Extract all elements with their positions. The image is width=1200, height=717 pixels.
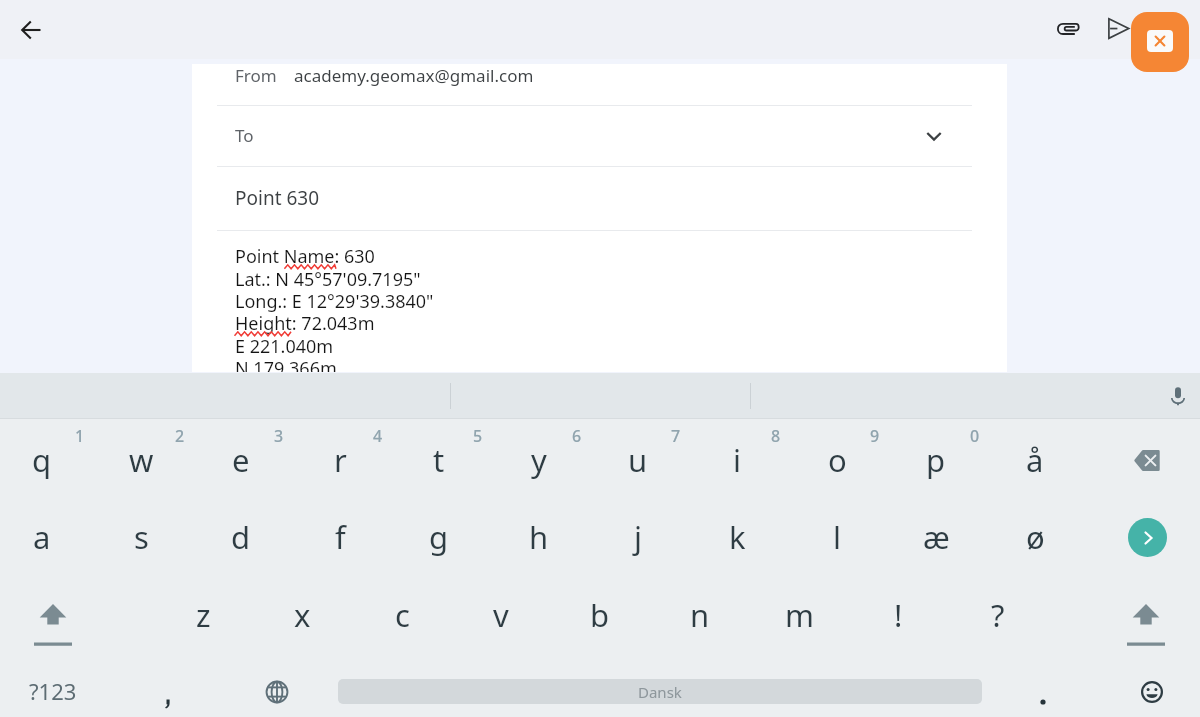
button[interactable]: j bbox=[593, 510, 683, 564]
button[interactable]: Enter bbox=[1102, 505, 1192, 569]
staticText: ! bbox=[894, 594, 903, 636]
staticText: r bbox=[334, 439, 347, 481]
staticText: Height: 72.043m bbox=[235, 311, 375, 336]
button[interactable]: ! bbox=[853, 588, 943, 642]
button[interactable]: d bbox=[196, 510, 286, 564]
staticText: z bbox=[196, 594, 211, 636]
button[interactable]: x bbox=[257, 588, 347, 642]
staticText: d bbox=[231, 516, 251, 558]
staticText: k bbox=[729, 516, 746, 558]
button[interactable]: z bbox=[158, 588, 248, 642]
button[interactable]: Comma bbox=[123, 672, 213, 717]
staticText: 6 bbox=[572, 425, 582, 447]
button[interactable]: g bbox=[394, 510, 484, 564]
button[interactable]: Attach file bbox=[1046, 7, 1090, 51]
button[interactable]: y bbox=[494, 433, 584, 487]
staticText: From bbox=[235, 64, 277, 87]
button[interactable]: ø bbox=[990, 510, 1080, 564]
staticText: Point 630 bbox=[235, 185, 320, 211]
button[interactable]: Dansk bbox=[338, 679, 982, 704]
staticText: h bbox=[529, 516, 549, 558]
button[interactable]: å bbox=[990, 433, 1080, 487]
button[interactable]: a bbox=[0, 510, 87, 564]
button[interactable]: Period bbox=[998, 670, 1088, 717]
staticText: 7 bbox=[671, 425, 681, 447]
button[interactable]: q bbox=[0, 433, 87, 487]
staticText: E 221.040m bbox=[235, 334, 334, 359]
staticText: academy.geomax@gmail.com bbox=[294, 64, 534, 87]
staticText: To bbox=[235, 124, 254, 147]
staticText: b bbox=[590, 594, 610, 636]
button[interactable]: h bbox=[494, 510, 584, 564]
button[interactable]: ? bbox=[953, 588, 1043, 642]
button[interactable]: p bbox=[891, 433, 981, 487]
staticText: ø bbox=[1026, 516, 1045, 558]
button[interactable]: n bbox=[655, 588, 745, 642]
staticText: u bbox=[628, 439, 648, 481]
button[interactable]: æ bbox=[891, 510, 981, 564]
staticText: 5 bbox=[473, 425, 483, 447]
staticText: Point Name: 630 bbox=[235, 244, 375, 269]
button[interactable]: Voice input bbox=[1155, 373, 1200, 418]
button[interactable]: Send bbox=[1097, 7, 1141, 51]
staticText: 9 bbox=[870, 425, 880, 447]
button[interactable]: o bbox=[792, 433, 882, 487]
staticText: l bbox=[833, 516, 841, 558]
button[interactable]: i bbox=[692, 433, 782, 487]
button[interactable]: Backspace bbox=[1102, 428, 1192, 492]
button[interactable]: u bbox=[593, 433, 683, 487]
staticText: å bbox=[1026, 439, 1044, 481]
staticText: 4 bbox=[373, 425, 383, 447]
staticText: n bbox=[690, 594, 710, 636]
staticText: Long.: E 12°29'39.3840" bbox=[235, 289, 434, 314]
staticText: q bbox=[32, 439, 52, 481]
button[interactable]: m bbox=[754, 588, 844, 642]
button[interactable]: s bbox=[96, 510, 186, 564]
staticText: 2 bbox=[175, 425, 185, 447]
staticText: e bbox=[232, 439, 250, 481]
button[interactable]: r bbox=[295, 433, 385, 487]
staticText: c bbox=[395, 594, 410, 636]
button[interactable]: b bbox=[555, 588, 645, 642]
staticText: y bbox=[531, 439, 547, 481]
button[interactable]: Shift bbox=[1101, 592, 1191, 656]
staticText: f bbox=[335, 516, 346, 558]
staticText: ? bbox=[991, 594, 1005, 636]
staticText: m bbox=[785, 594, 814, 636]
staticText: N 179.366m bbox=[235, 356, 337, 372]
button[interactable]: l bbox=[792, 510, 882, 564]
button[interactable]: f bbox=[295, 510, 385, 564]
staticText: 1 bbox=[75, 425, 85, 447]
staticText: i bbox=[733, 439, 741, 481]
button[interactable]: t bbox=[394, 433, 484, 487]
staticText: j bbox=[634, 516, 642, 558]
staticText: 0 bbox=[970, 425, 980, 447]
staticText: a bbox=[33, 516, 51, 558]
button[interactable]: Emoji bbox=[1107, 660, 1197, 717]
button[interactable]: c bbox=[357, 588, 447, 642]
staticText: p bbox=[926, 439, 946, 481]
button[interactable]: Show more recipients bbox=[919, 121, 949, 151]
staticText: w bbox=[129, 439, 154, 481]
staticText: æ bbox=[923, 516, 950, 558]
staticText: s bbox=[134, 516, 149, 558]
button[interactable]: v bbox=[456, 588, 546, 642]
staticText: x bbox=[294, 594, 311, 636]
button[interactable]: Symbols bbox=[8, 676, 98, 708]
button[interactable]: e bbox=[196, 433, 286, 487]
staticText: t bbox=[433, 439, 445, 481]
staticText: 3 bbox=[274, 425, 284, 447]
staticText: o bbox=[828, 439, 847, 481]
button[interactable]: k bbox=[692, 510, 782, 564]
staticText: Dansk bbox=[638, 682, 682, 702]
button[interactable]: Shift bbox=[8, 592, 98, 656]
button[interactable]: Navigate up bbox=[8, 6, 56, 54]
staticText: v bbox=[493, 594, 509, 636]
button[interactable]: w bbox=[96, 433, 186, 487]
staticText: Lat.: N 45°57'09.7195" bbox=[235, 267, 421, 292]
staticText: g bbox=[429, 516, 449, 558]
staticText: 8 bbox=[771, 425, 781, 447]
button[interactable]: Change keyboard language bbox=[232, 660, 322, 717]
button[interactable]: Close bbox=[1131, 12, 1189, 72]
staticText: ?123 bbox=[29, 676, 77, 706]
